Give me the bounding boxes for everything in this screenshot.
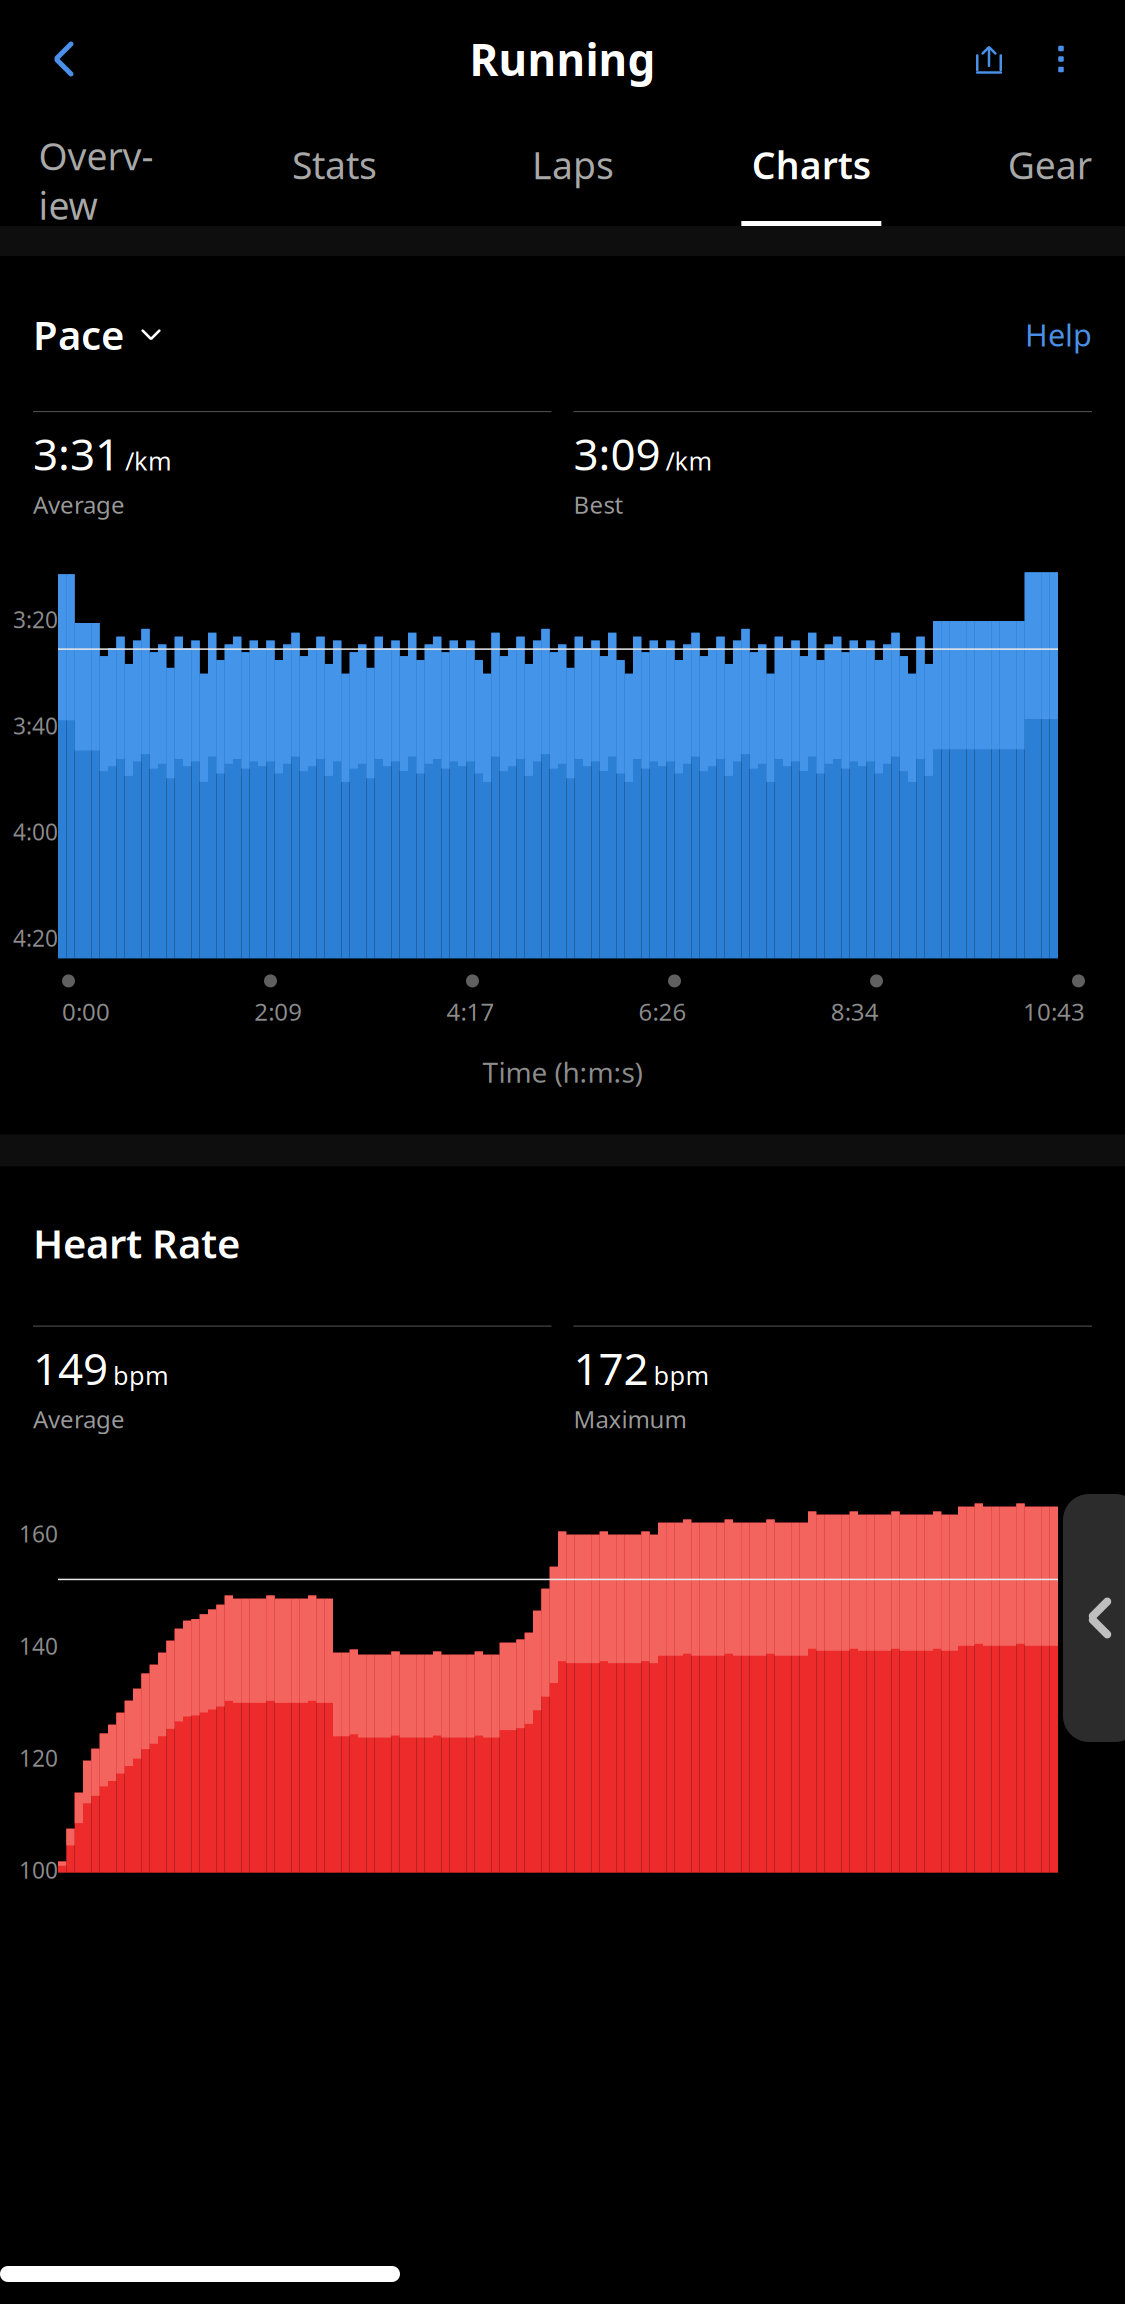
staticText: 4:00	[13, 817, 58, 847]
staticText: Maximum	[573, 1403, 686, 1435]
staticText: Best	[573, 488, 623, 520]
staticText: 3:20	[13, 604, 58, 634]
staticText: /km	[125, 444, 172, 477]
button[interactable]: Pace	[33, 308, 162, 361]
staticText: /km	[665, 444, 712, 477]
staticText: 120	[19, 1743, 58, 1773]
staticText: 100	[19, 1855, 58, 1885]
staticText: 140	[19, 1631, 58, 1661]
staticText: 3:09	[573, 424, 660, 482]
staticText: bpm	[653, 1358, 709, 1392]
staticText: Average	[33, 1403, 125, 1435]
staticText: Time (h:m:s)	[482, 1053, 642, 1090]
staticText: bpm	[113, 1358, 169, 1392]
button[interactable]: Open side panel	[1063, 1494, 1125, 1742]
staticText: 149	[33, 1339, 108, 1397]
staticText: Charts	[752, 140, 871, 190]
staticText: Overview	[38, 131, 153, 230]
button[interactable]: Laps	[503, 118, 622, 226]
staticText: 8:34	[831, 995, 879, 1027]
staticText: Help	[1025, 314, 1092, 355]
staticText: 172	[573, 1339, 648, 1397]
staticText: 10:43	[1023, 995, 1085, 1027]
staticText: Laps	[532, 140, 614, 190]
staticText: Average	[33, 488, 125, 520]
staticText: 4:17	[446, 995, 494, 1027]
button[interactable]: Share	[953, 23, 1025, 95]
button[interactable]: Help	[1025, 314, 1092, 355]
button[interactable]: Overview	[26, 118, 145, 226]
staticText: 4:20	[13, 923, 58, 953]
staticText: 3:40	[13, 711, 58, 741]
button[interactable]: Stats	[264, 118, 384, 226]
staticText: Running	[469, 30, 655, 88]
staticText: 6:26	[639, 995, 687, 1027]
button[interactable]: More options	[1025, 23, 1097, 95]
staticText: 0:00	[62, 995, 110, 1027]
staticText: 160	[19, 1519, 58, 1549]
staticText: Pace	[33, 308, 124, 361]
button[interactable]: Charts	[741, 118, 860, 226]
staticText: 3:31	[33, 424, 120, 482]
staticText: Heart Rate	[33, 1216, 240, 1270]
staticText: Gear	[1008, 140, 1092, 190]
button[interactable]: Gear	[980, 118, 1099, 226]
staticText: 2:09	[254, 995, 302, 1027]
button[interactable]: Back	[28, 23, 100, 95]
staticText: Stats	[292, 140, 377, 190]
